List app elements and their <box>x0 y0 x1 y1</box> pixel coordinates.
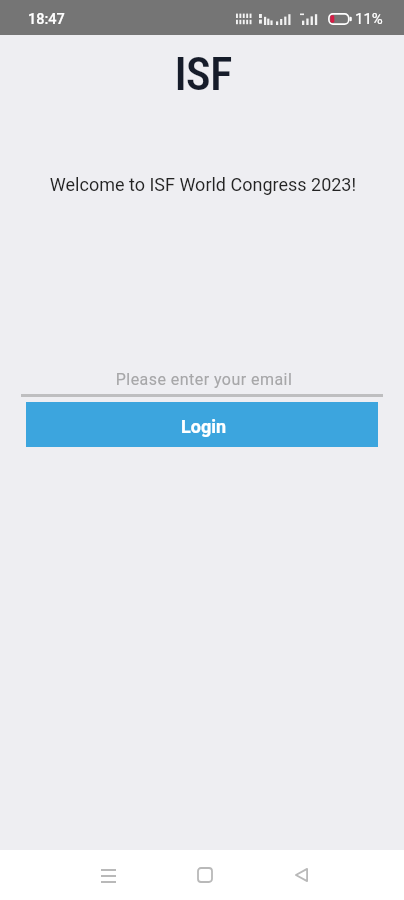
button[interactable]: Back <box>277 851 325 899</box>
button[interactable]: Login <box>26 402 378 447</box>
staticText: Login <box>181 416 227 437</box>
staticText: Please enter your email <box>23 370 385 389</box>
button[interactable]: Please enter your email <box>21 370 383 397</box>
staticText: 18:47 <box>28 11 65 28</box>
staticText: Welcome to ISF World Congress 2023! <box>1 174 404 195</box>
staticText: 11% <box>355 10 383 28</box>
button[interactable]: Home <box>181 851 229 899</box>
button[interactable]: Recent apps <box>84 852 132 900</box>
staticText: ISF <box>1 46 404 101</box>
